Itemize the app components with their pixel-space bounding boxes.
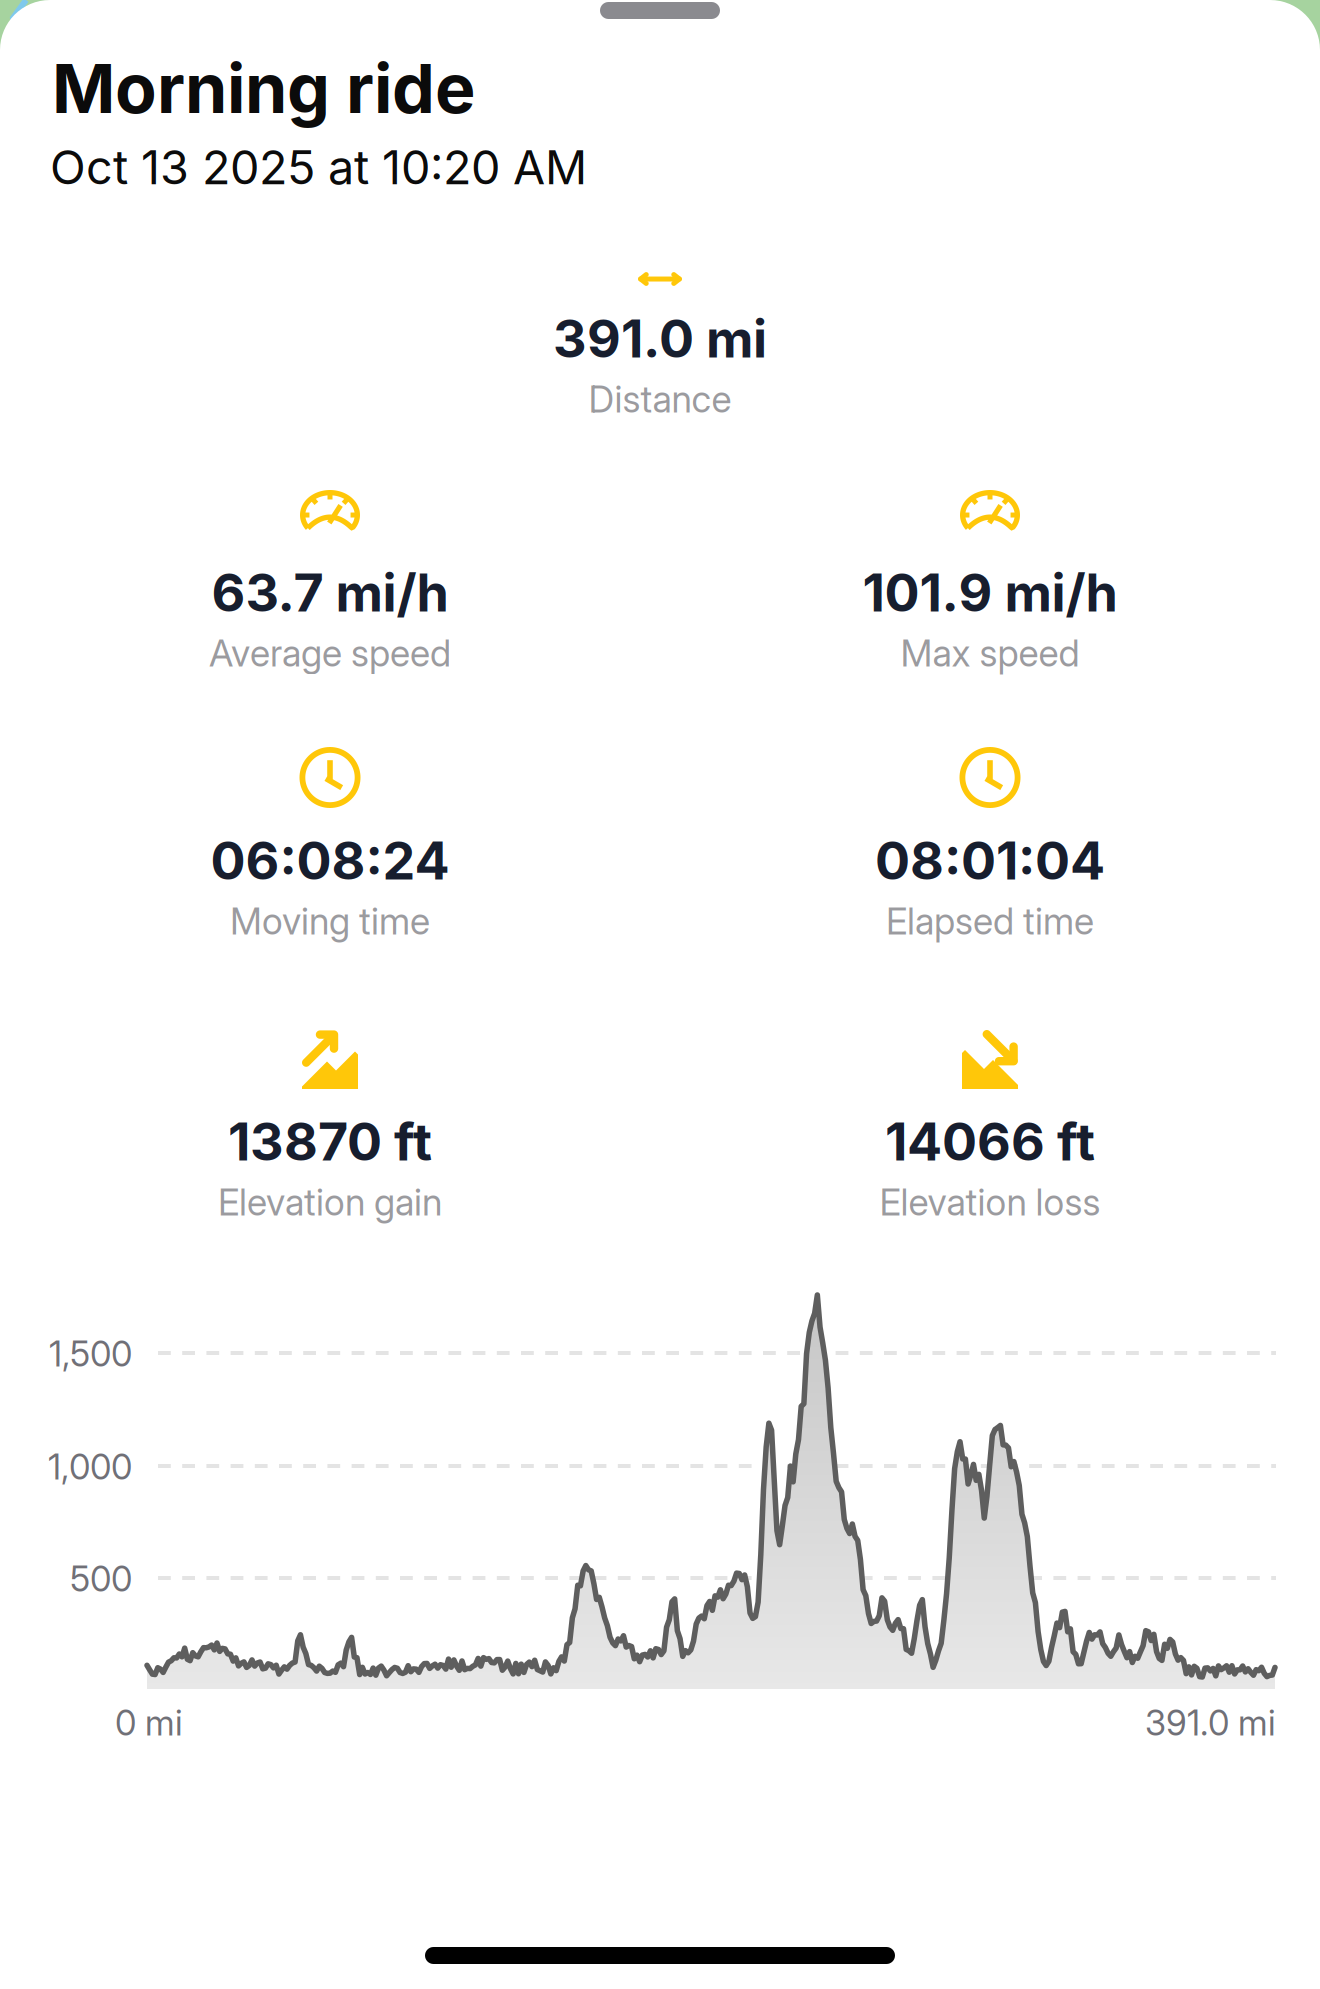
staticText: Moving time xyxy=(230,899,430,943)
button[interactable]: 14066 ft xyxy=(660,1030,1320,1224)
staticText: 63.7 mi/h xyxy=(211,561,448,624)
button[interactable]: 06:08:24 xyxy=(0,747,660,943)
button[interactable]: 13870 ft xyxy=(0,1030,660,1224)
staticText: Elevation loss xyxy=(879,1180,1100,1224)
staticText: Distance xyxy=(588,377,731,421)
staticText: 500 xyxy=(70,1558,132,1600)
staticText: 1,000 xyxy=(48,1446,132,1488)
button[interactable]: 391.0 mi xyxy=(0,272,1320,421)
staticText: Average speed xyxy=(209,631,451,675)
staticText: 08:01:04 xyxy=(875,829,1105,892)
staticText: Elevation gain xyxy=(218,1180,442,1224)
staticText: 391.0 mi xyxy=(1145,1702,1276,1744)
staticText: Max speed xyxy=(900,631,1079,675)
staticText: Morning ride xyxy=(52,47,476,129)
button[interactable]: 63.7 mi/h xyxy=(0,490,660,675)
staticText: 13870 ft xyxy=(228,1110,432,1173)
staticText: Elapsed time xyxy=(886,899,1094,943)
staticText: Oct 13 2025 at 10:20 AM xyxy=(50,139,587,195)
staticText: 14066 ft xyxy=(885,1110,1095,1173)
button[interactable]: 08:01:04 xyxy=(660,747,1320,943)
staticText: 1,500 xyxy=(49,1333,132,1375)
staticText: 06:08:24 xyxy=(210,829,449,892)
staticText: 101.9 mi/h xyxy=(862,561,1117,624)
button[interactable]: 101.9 mi/h xyxy=(660,490,1320,675)
staticText: 0 mi xyxy=(115,1702,183,1744)
staticText: 391.0 mi xyxy=(553,307,767,370)
